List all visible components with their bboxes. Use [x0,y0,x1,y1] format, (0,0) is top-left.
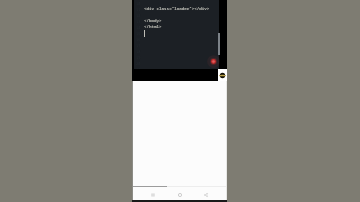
button[interactable]: Channel avatar [218,69,227,81]
staticText: </body> [144,18,162,24]
staticText: 21 [136,67,141,70]
button[interactable]: Record [206,54,221,69]
staticText: <div class="loader"></div> [144,6,210,12]
button[interactable]: Recents [148,190,158,200]
button[interactable]: Home [175,190,185,200]
button[interactable]: Back [201,190,211,200]
staticText: </html> [144,24,162,30]
